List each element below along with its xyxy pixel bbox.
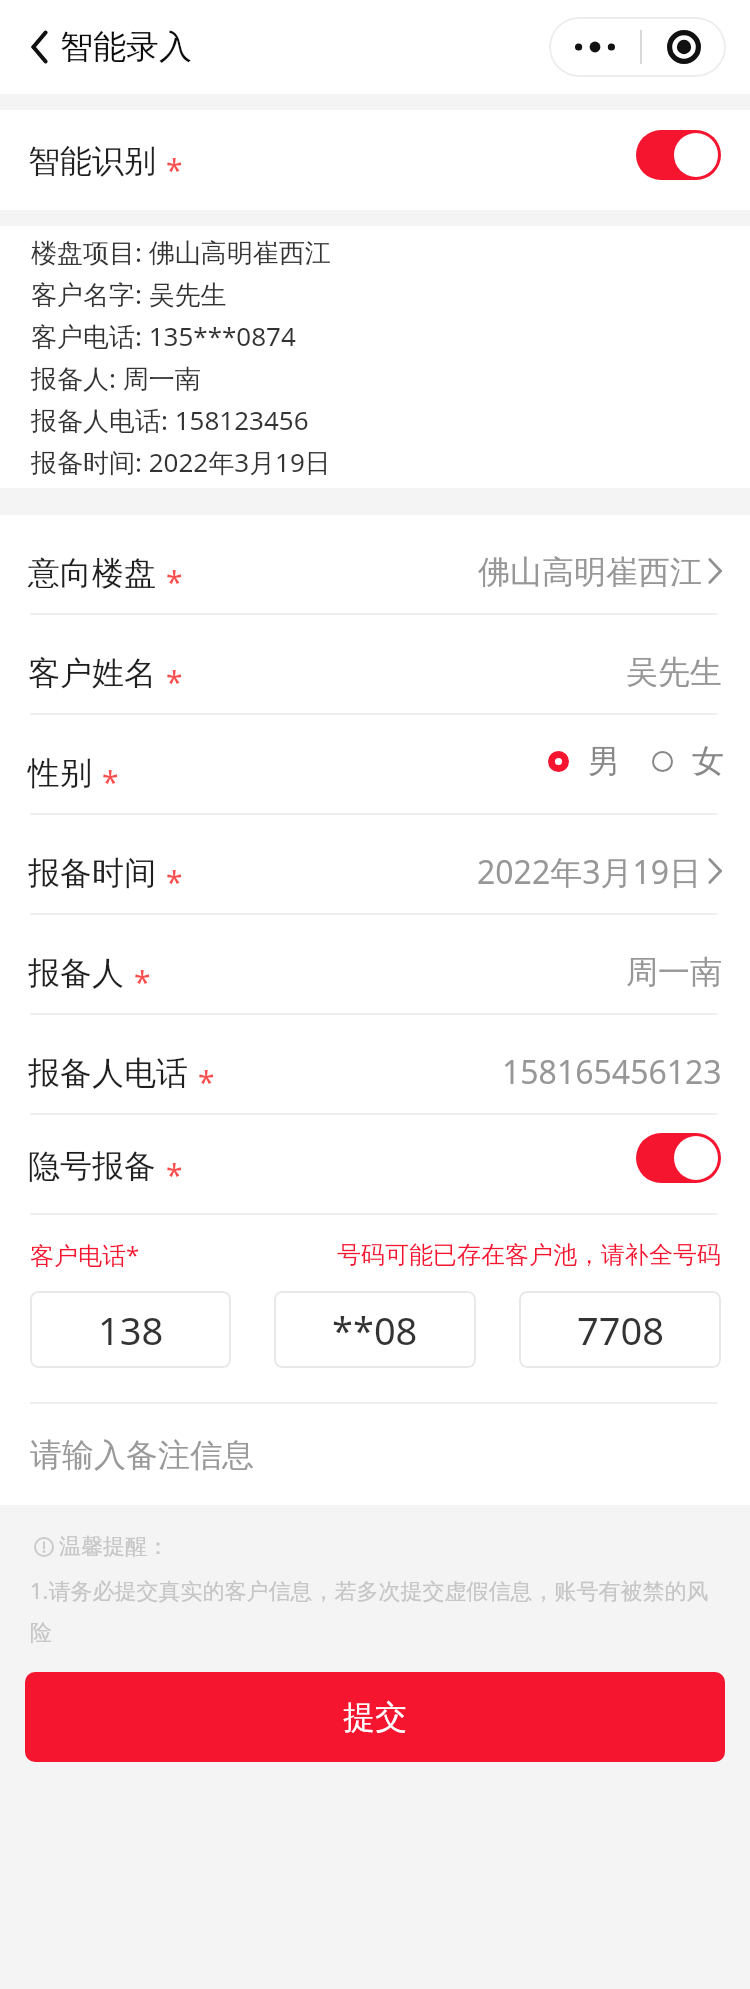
staticText: 请输入备注信息 (30, 1435, 254, 1475)
staticText: 报备人电话: 158123456 (31, 402, 309, 438)
button[interactable]: 关闭 (642, 30, 726, 64)
staticText: 7708 (577, 1304, 664, 1356)
staticText: * (166, 561, 183, 602)
staticText: 智能录入 (60, 26, 192, 68)
staticText: * (102, 761, 119, 802)
staticText: 报备时间: 2022年3月19日 (31, 444, 331, 480)
button[interactable]: 客户姓名 (0, 615, 750, 715)
button[interactable]: 报备时间 (0, 815, 750, 915)
staticText: 性别 (28, 753, 92, 793)
staticText: 客户姓名 (28, 653, 156, 693)
button[interactable]: 提交 (25, 1672, 725, 1762)
staticText: 女 (692, 741, 724, 781)
staticText: 提交 (343, 1697, 407, 1737)
button[interactable]: 女 (652, 741, 724, 781)
staticText: 楼盘项目: 佛山高明崔西江 (31, 234, 331, 270)
button[interactable]: 更多 (549, 40, 640, 54)
staticText: 158165456123 (502, 1050, 722, 1094)
button[interactable]: 隐号报备 (0, 1115, 750, 1215)
button[interactable]: 返回 (18, 17, 60, 77)
button[interactable]: 7708 (519, 1291, 721, 1368)
staticText: 报备人电话 (28, 1053, 188, 1093)
staticText: 佛山高明崔西江 (478, 552, 702, 592)
button[interactable]: 意向楼盘 (0, 515, 750, 615)
staticText: 报备时间 (28, 853, 156, 893)
staticText: 周一南 (626, 952, 722, 992)
staticText: * (166, 1154, 183, 1195)
button[interactable]: 隐号报备开关 (636, 1133, 721, 1183)
staticText: * (166, 661, 183, 702)
staticText: * (134, 961, 151, 1002)
button[interactable]: 男 (548, 741, 620, 781)
staticText: 吴先生 (626, 652, 722, 692)
button[interactable]: **08 (274, 1291, 476, 1368)
button[interactable]: 报备人 (0, 915, 750, 1015)
staticText: 报备人: 周一南 (31, 360, 201, 396)
staticText: * (166, 861, 183, 902)
button[interactable]: 138 (30, 1291, 231, 1368)
staticText: 男 (588, 741, 620, 781)
button[interactable]: 智能识别开关 (636, 130, 721, 180)
staticText: 138 (98, 1304, 164, 1356)
staticText: 号码可能已存在客户池，请补全号码 (337, 1240, 721, 1270)
button[interactable]: 报备人电话 (0, 1015, 750, 1115)
staticText: 智能识别 (28, 141, 156, 181)
staticText: 客户电话* (30, 1238, 140, 1271)
staticText: 报备人 (28, 953, 124, 993)
staticText: 温馨提醒： (59, 1533, 169, 1561)
staticText: **08 (332, 1304, 418, 1356)
button[interactable]: 智能识别 (0, 110, 750, 210)
staticText: 客户电话: 135***0874 (31, 318, 296, 354)
staticText: 客户名字: 吴先生 (31, 276, 227, 312)
staticText: 2022年3月19日 (477, 850, 702, 894)
staticText: 1.请务必提交真实的客户信息，若多次提交虚假信息，账号有被禁的风险 (30, 1575, 725, 1647)
staticText: * (198, 1061, 215, 1102)
staticText: 意向楼盘 (28, 553, 156, 593)
staticText: * (166, 149, 183, 190)
staticText: 隐号报备 (28, 1146, 156, 1186)
